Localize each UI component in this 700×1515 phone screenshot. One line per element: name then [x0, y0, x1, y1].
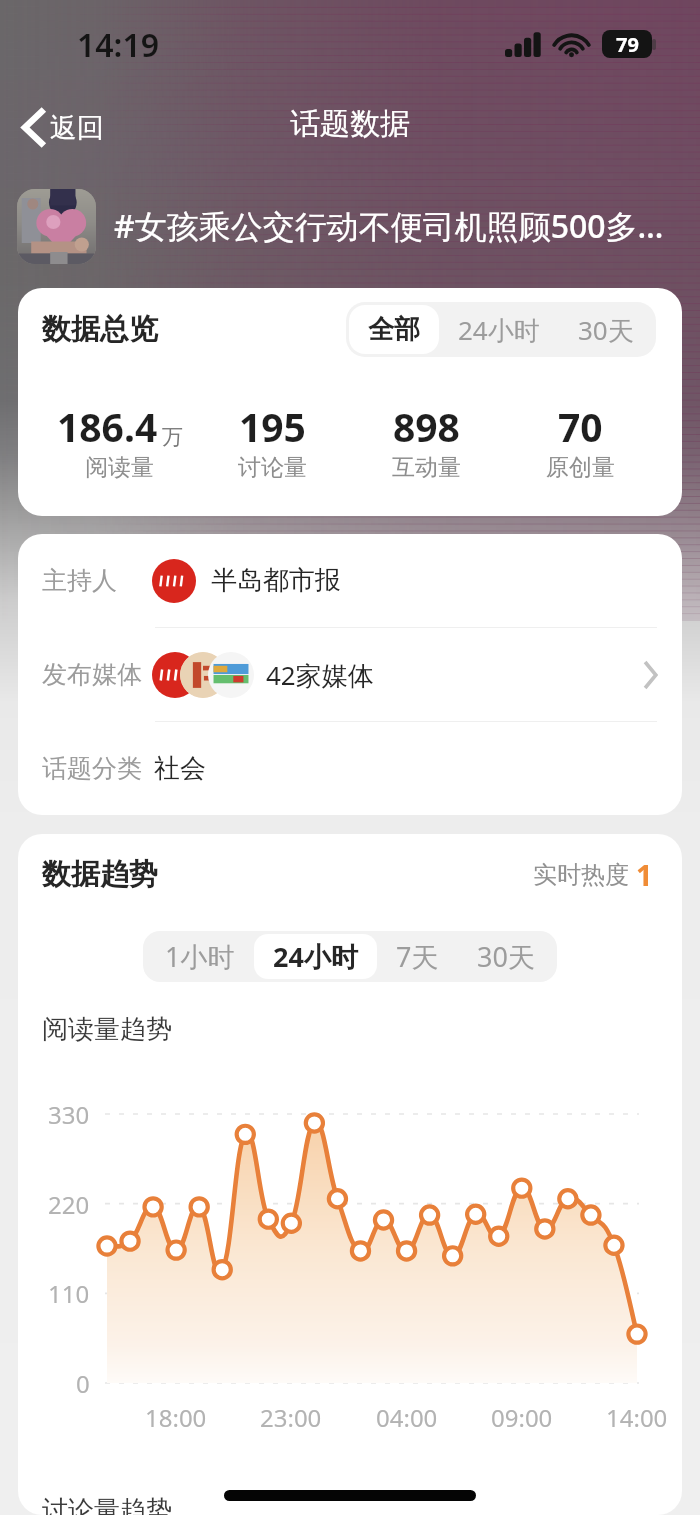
staticText: 实时热度 [533, 860, 629, 890]
staticText: 14:19 [77, 23, 160, 67]
staticText: 数据总览 [42, 311, 158, 348]
staticText: 70 [558, 400, 603, 453]
button[interactable]: 7天 [377, 934, 458, 979]
staticText: 1小时 [165, 938, 235, 975]
staticText: 阅读量趋势 [42, 1013, 172, 1046]
button[interactable]: 主持人 [18, 534, 682, 627]
staticText: 全部 [368, 313, 420, 346]
staticText: 原创量 [546, 453, 615, 482]
staticText: 330 [48, 1098, 90, 1131]
staticText: 发布媒体 [42, 659, 142, 690]
button[interactable]: 发布媒体 [18, 628, 682, 721]
staticText: 24小时 [273, 938, 358, 975]
staticText: 数据趋势 [42, 856, 158, 893]
staticText: 42家媒体 [266, 657, 374, 693]
button[interactable]: 话题分类 [18, 722, 682, 815]
staticText: 898 [393, 400, 460, 453]
staticText: 110 [48, 1277, 90, 1310]
staticText: 主持人 [42, 565, 117, 596]
staticText: 24小时 [458, 312, 540, 348]
staticText: 万 [162, 424, 183, 450]
staticText: 讨论量 [238, 453, 307, 482]
staticText: 04:00 [376, 1401, 438, 1434]
staticText: 阅读量 [85, 453, 154, 482]
staticText: 186.4 [57, 400, 158, 453]
staticText: 社会 [154, 752, 206, 785]
staticText: 互动量 [392, 453, 461, 482]
button[interactable]: 24小时 [439, 305, 559, 354]
staticText: 0 [76, 1367, 90, 1400]
other: More media [643, 662, 657, 688]
staticText: 09:00 [491, 1401, 553, 1434]
staticText: 195 [239, 400, 306, 453]
button[interactable]: 全部 [349, 305, 439, 354]
button[interactable]: 30天 [458, 934, 554, 979]
button[interactable]: 1小时 [146, 934, 254, 979]
staticText: 23:00 [260, 1401, 322, 1434]
staticText: 讨论量趋势 [42, 1494, 172, 1515]
staticText: 7天 [396, 938, 439, 975]
staticText: 79 [616, 31, 639, 58]
staticText: 18:00 [145, 1401, 207, 1434]
staticText: 话题分类 [42, 753, 142, 784]
staticText: #女孩乘公交行动不便司机照顾500多… [114, 204, 664, 248]
staticText: 返回 [50, 111, 104, 145]
button[interactable]: 24小时 [254, 934, 377, 979]
staticText: 30天 [578, 312, 634, 348]
staticText: 1 [636, 855, 653, 894]
staticText: 14:00 [606, 1401, 668, 1434]
staticText: 话题数据 [290, 105, 410, 143]
staticText: 30天 [477, 938, 535, 975]
button[interactable]: 返回 [8, 102, 116, 153]
staticText: 220 [48, 1188, 90, 1221]
button[interactable]: 30天 [559, 305, 653, 354]
staticText: 半岛都市报 [211, 564, 341, 597]
button[interactable]: #女孩乘公交行动不便司机照顾500多… [0, 166, 700, 262]
